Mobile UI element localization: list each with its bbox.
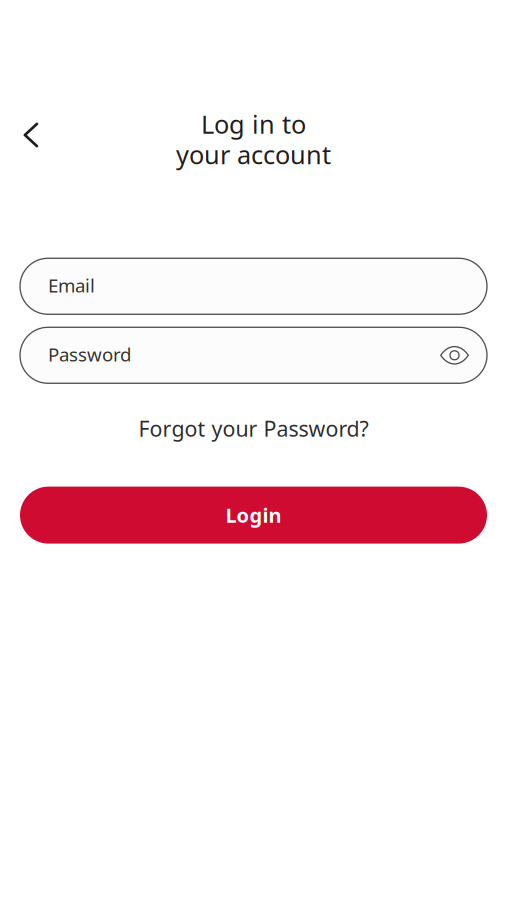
staticText: Login <box>225 502 281 528</box>
button[interactable]: Login <box>20 487 487 544</box>
button[interactable]: Forgot your Password? <box>20 414 487 443</box>
staticText: Log in to <box>201 107 306 141</box>
button[interactable]: Back <box>9 113 53 157</box>
staticText: your account <box>176 138 331 171</box>
staticText: Email <box>48 273 95 298</box>
button[interactable]: Show password <box>431 327 487 383</box>
button[interactable]: Password <box>20 327 431 383</box>
staticText: Forgot your Password? <box>138 414 368 443</box>
button[interactable]: Email <box>20 258 469 314</box>
staticText: Password <box>48 342 131 367</box>
